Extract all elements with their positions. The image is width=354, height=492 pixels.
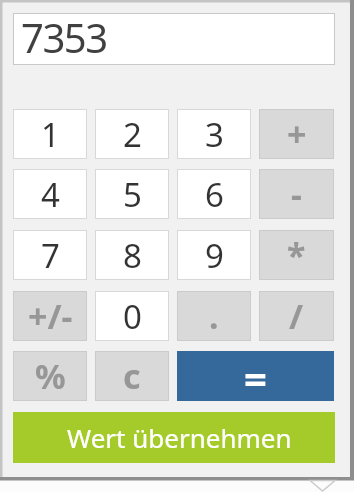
staticText: + <box>287 111 307 157</box>
staticText: . <box>209 293 219 339</box>
staticText: 3 <box>205 112 224 157</box>
button[interactable]: 6 <box>177 169 251 219</box>
staticText: 6 <box>205 172 224 217</box>
staticText: +/- <box>28 293 73 339</box>
button[interactable]: * <box>259 230 334 280</box>
button[interactable]: + <box>259 109 334 159</box>
staticText: 2 <box>123 112 142 157</box>
button[interactable]: . <box>177 291 251 341</box>
button[interactable]: 5 <box>95 169 169 219</box>
button[interactable]: 7 <box>13 230 87 280</box>
staticText: 8 <box>123 233 142 278</box>
staticText: c <box>123 353 141 399</box>
staticText: * <box>287 232 306 278</box>
staticText: % <box>35 353 66 399</box>
button[interactable]: 9 <box>177 230 251 280</box>
staticText: 7353 <box>21 10 107 62</box>
staticText: 9 <box>205 233 224 278</box>
button[interactable]: % <box>13 351 87 401</box>
button[interactable]: / <box>259 291 334 341</box>
staticText: 4 <box>41 172 60 217</box>
button[interactable]: +/- <box>13 291 87 341</box>
button[interactable]: = <box>177 351 334 401</box>
staticText: 1 <box>41 112 60 157</box>
button[interactable]: 2 <box>95 109 169 159</box>
button[interactable]: 4 <box>13 169 87 219</box>
button[interactable]: 0 <box>95 291 169 341</box>
button[interactable]: 3 <box>177 109 251 159</box>
button[interactable]: Wert übernehmen <box>13 412 335 463</box>
button[interactable]: 7353 <box>13 13 335 65</box>
staticText: Wert übernehmen <box>67 420 292 455</box>
button[interactable]: 8 <box>95 230 169 280</box>
button[interactable]: - <box>259 169 334 219</box>
staticText: = <box>244 351 267 401</box>
staticText: 5 <box>123 172 142 217</box>
button[interactable]: c <box>95 351 169 401</box>
staticText: / <box>289 293 304 339</box>
staticText: 7 <box>41 233 60 278</box>
staticText: 0 <box>123 294 142 339</box>
staticText: - <box>291 171 302 217</box>
button[interactable]: 1 <box>13 109 87 159</box>
